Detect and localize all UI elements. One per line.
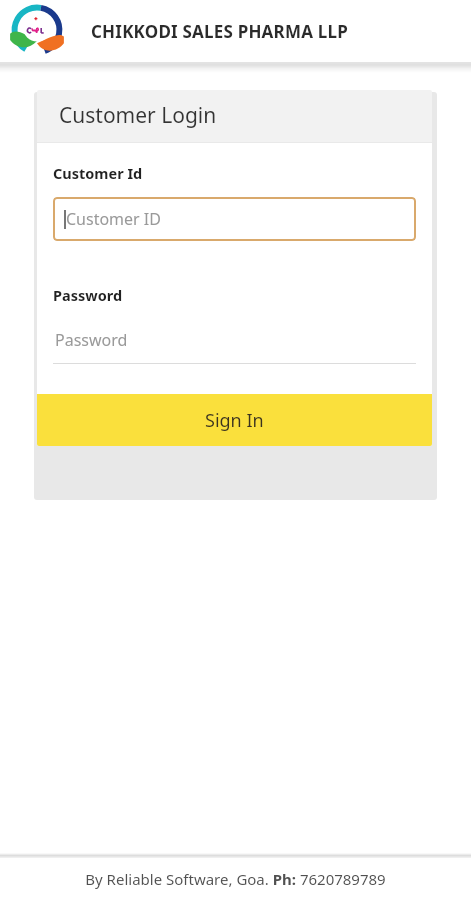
staticText: Password (53, 285, 123, 305)
staticText: Customer Id (53, 163, 143, 183)
staticText: Password (55, 329, 128, 351)
staticText: Customer ID (66, 208, 161, 230)
staticText: By Reliable Software, Goa. Ph: 762078978… (85, 869, 386, 889)
button[interactable]: Password (53, 325, 416, 364)
staticText: Sign In (205, 408, 264, 433)
staticText: CHIKKODI SALES PHARMA LLP (91, 20, 348, 43)
button[interactable]: Customer ID (53, 197, 416, 241)
staticText: Customer Login (59, 101, 217, 130)
button[interactable]: Sign In (37, 394, 432, 446)
